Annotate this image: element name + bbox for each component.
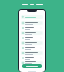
button[interactable]	[22, 64, 42, 68]
button[interactable]: Service	[21, 46, 43, 50]
button[interactable]: Service	[21, 61, 43, 64]
button[interactable]: Search	[21, 15, 43, 19]
button[interactable]: Service	[21, 41, 43, 45]
button[interactable]: Service	[21, 26, 43, 30]
button[interactable]: Service	[21, 21, 43, 25]
button[interactable]: Service	[21, 31, 43, 35]
button[interactable]: Service	[21, 56, 43, 60]
button[interactable]: Service	[21, 51, 43, 55]
button[interactable]: Service	[21, 36, 43, 40]
other: Search	[22, 16, 24, 18]
